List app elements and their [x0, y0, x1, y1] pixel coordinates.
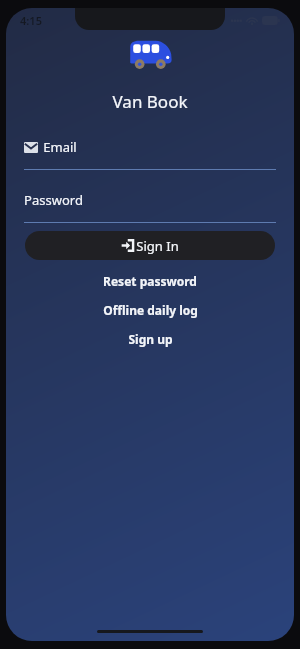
staticText: Sign up	[128, 331, 173, 347]
button[interactable]: Sign In	[25, 231, 275, 260]
staticText: Password	[24, 191, 83, 209]
staticText: Email	[43, 138, 77, 156]
staticText: Reset password	[103, 273, 197, 289]
staticText: 4:15	[20, 13, 42, 28]
button[interactable]: Offline daily log	[93, 301, 208, 319]
staticText: Offline daily log	[103, 302, 198, 318]
staticText: Sign In	[136, 237, 179, 255]
other: Sign In	[121, 239, 134, 252]
button[interactable]: Sign up	[118, 330, 183, 348]
other: Van logo	[127, 37, 173, 71]
button[interactable]: Reset password	[93, 272, 207, 290]
other: Email	[24, 142, 38, 153]
button[interactable]: Email	[6, 138, 294, 170]
button[interactable]: Password	[6, 191, 294, 223]
staticText: Van Book	[112, 90, 188, 113]
